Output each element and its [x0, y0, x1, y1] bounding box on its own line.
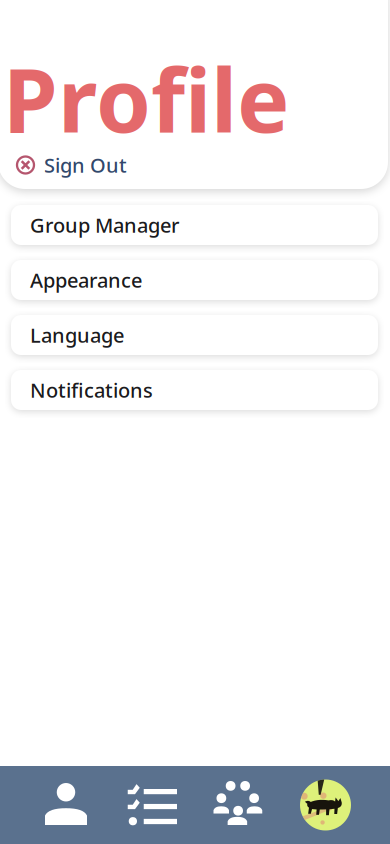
button[interactable]: Group Manager [11, 205, 378, 245]
button[interactable]: Sign Out [1, 148, 201, 182]
staticText: Sign Out [44, 152, 127, 178]
button[interactable]: Account [282, 766, 368, 844]
button[interactable]: Groups [195, 766, 281, 844]
button[interactable]: Appearance [11, 260, 378, 300]
button[interactable]: Language [11, 315, 378, 355]
button[interactable]: Notifications [11, 370, 378, 410]
staticText: Language [30, 322, 124, 348]
button[interactable]: Profile [23, 766, 109, 844]
staticText: Profile [3, 40, 290, 157]
staticText: Notifications [30, 377, 153, 403]
staticText: Appearance [30, 267, 142, 293]
button[interactable]: Tasks [109, 766, 195, 844]
staticText: Group Manager [30, 212, 179, 238]
